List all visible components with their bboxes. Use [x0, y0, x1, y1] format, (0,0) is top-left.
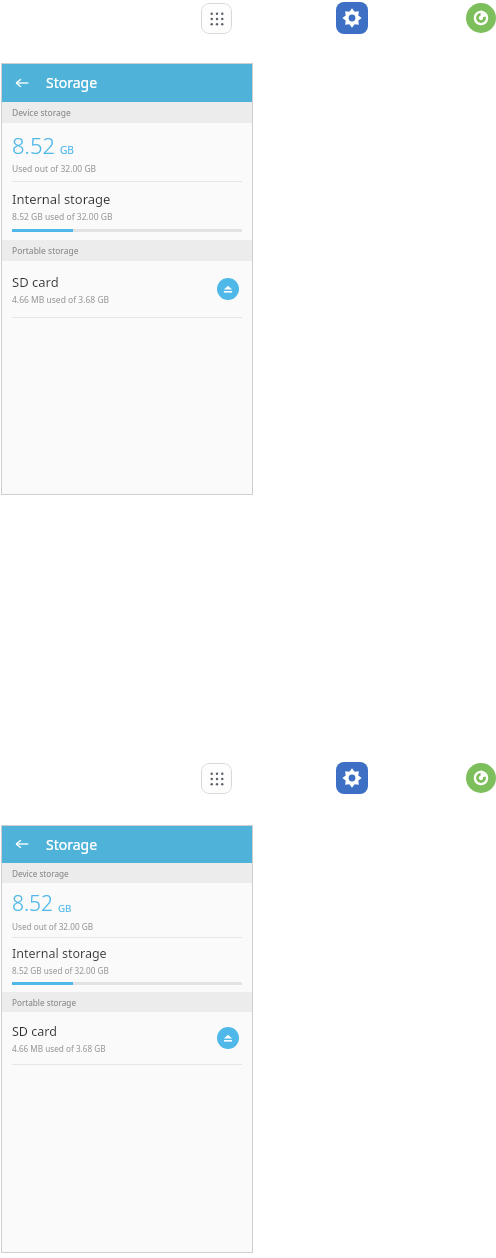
staticText: 8.52 [12, 889, 54, 918]
button[interactable]: 8.52 [1, 883, 253, 937]
staticText: 8.52 [12, 130, 56, 160]
button[interactable]: Internal storage [1, 182, 253, 240]
button[interactable]: SD card [1, 1012, 253, 1064]
staticText: Portable storage [12, 245, 79, 257]
staticText: 4.66 MB used of 3.68 GB [12, 1043, 106, 1054]
button[interactable]: 8.52 [1, 123, 253, 181]
button[interactable]: Apps [201, 3, 232, 34]
staticText: Portable storage [12, 997, 77, 1008]
button[interactable]: Settings [336, 762, 368, 794]
staticText: Storage [46, 73, 98, 92]
staticText: 4.66 MB used of 3.68 GB [12, 294, 110, 306]
button[interactable]: Eject SD card [217, 1027, 239, 1049]
staticText: Internal storage [12, 190, 111, 208]
staticText: SD card [12, 1023, 57, 1040]
staticText: 8.52 GB used of 32.00 GB [12, 965, 109, 976]
staticText: Internal storage [12, 945, 107, 962]
staticText: Device storage [12, 868, 69, 879]
staticText: SD card [12, 273, 59, 291]
button[interactable]: Refresh [466, 763, 496, 793]
staticText: GB [58, 902, 72, 915]
button[interactable]: Refresh [466, 3, 496, 33]
button[interactable]: Back [12, 834, 32, 854]
staticText: Storage [46, 835, 98, 854]
button[interactable]: Eject SD card [217, 278, 239, 300]
button[interactable]: Back [12, 73, 32, 93]
staticText: 8.52 GB used of 32.00 GB [12, 211, 113, 223]
button[interactable]: Settings [336, 2, 368, 34]
button[interactable]: SD card [1, 261, 253, 317]
button[interactable]: Apps [201, 763, 232, 794]
staticText: Used out of 32.00 GB [12, 921, 94, 932]
staticText: Device storage [12, 107, 71, 119]
button[interactable]: Internal storage [1, 938, 253, 992]
staticText: GB [60, 143, 74, 157]
staticText: Used out of 32.00 GB [12, 163, 97, 175]
